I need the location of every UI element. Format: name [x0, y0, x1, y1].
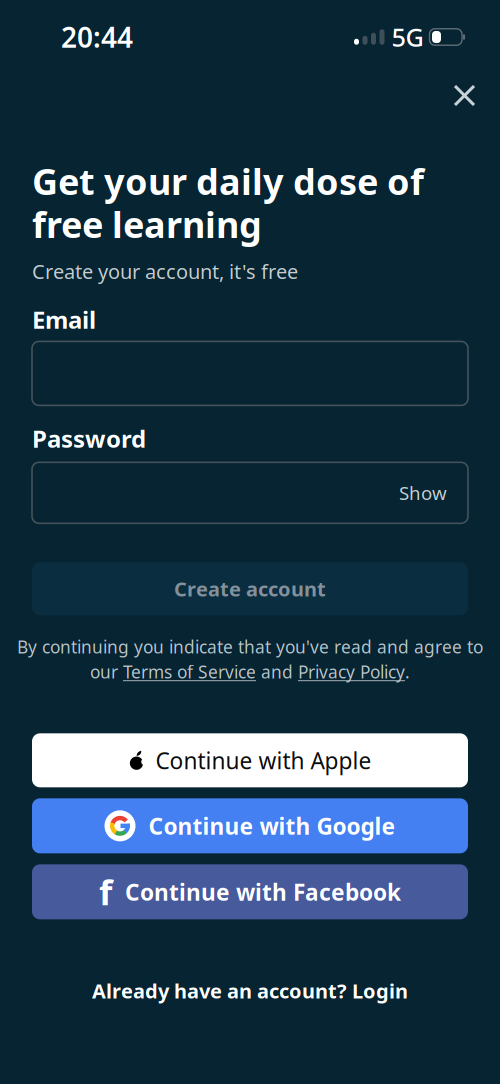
- button[interactable]: Already have an account? Login: [92, 977, 408, 1004]
- staticText: Already have an account? Login: [92, 977, 408, 1004]
- staticText: Continue with Google: [148, 811, 395, 841]
- button[interactable]: Continue with Apple: [32, 733, 468, 787]
- button[interactable]: Continue with Google: [32, 798, 468, 853]
- staticText: Privacy Policy: [298, 660, 405, 683]
- staticText: 5G: [391, 20, 423, 54]
- staticText: our: [90, 660, 123, 683]
- staticText: free learning: [32, 200, 262, 248]
- staticText: Terms of Service: [123, 660, 256, 683]
- staticText: and: [256, 660, 298, 683]
- button[interactable]: Email: [32, 341, 468, 405]
- staticText: Continue with Facebook: [125, 877, 401, 907]
- staticText: .: [405, 660, 410, 683]
- button[interactable]: Show: [399, 480, 447, 505]
- staticText: f: [99, 869, 112, 915]
- staticText: Email: [32, 304, 96, 335]
- staticText: By continuing you indicate that you've r…: [17, 635, 483, 658]
- button[interactable]: Password: [32, 462, 468, 523]
- button[interactable]: Close: [455, 86, 474, 105]
- button[interactable]: Privacy Policy: [298, 660, 405, 683]
- button[interactable]: f: [32, 864, 468, 919]
- button[interactable]: Create account: [32, 562, 468, 615]
- staticText: Get your daily dose of: [32, 157, 424, 205]
- staticText: Continue with Apple: [155, 745, 371, 775]
- staticText: Create your account, it's free: [32, 258, 298, 285]
- staticText: Password: [32, 422, 146, 454]
- staticText: 20:44: [61, 18, 133, 56]
- staticText: Create account: [174, 575, 326, 602]
- staticText: Show: [399, 480, 447, 505]
- button[interactable]: Terms of Service: [123, 660, 256, 683]
